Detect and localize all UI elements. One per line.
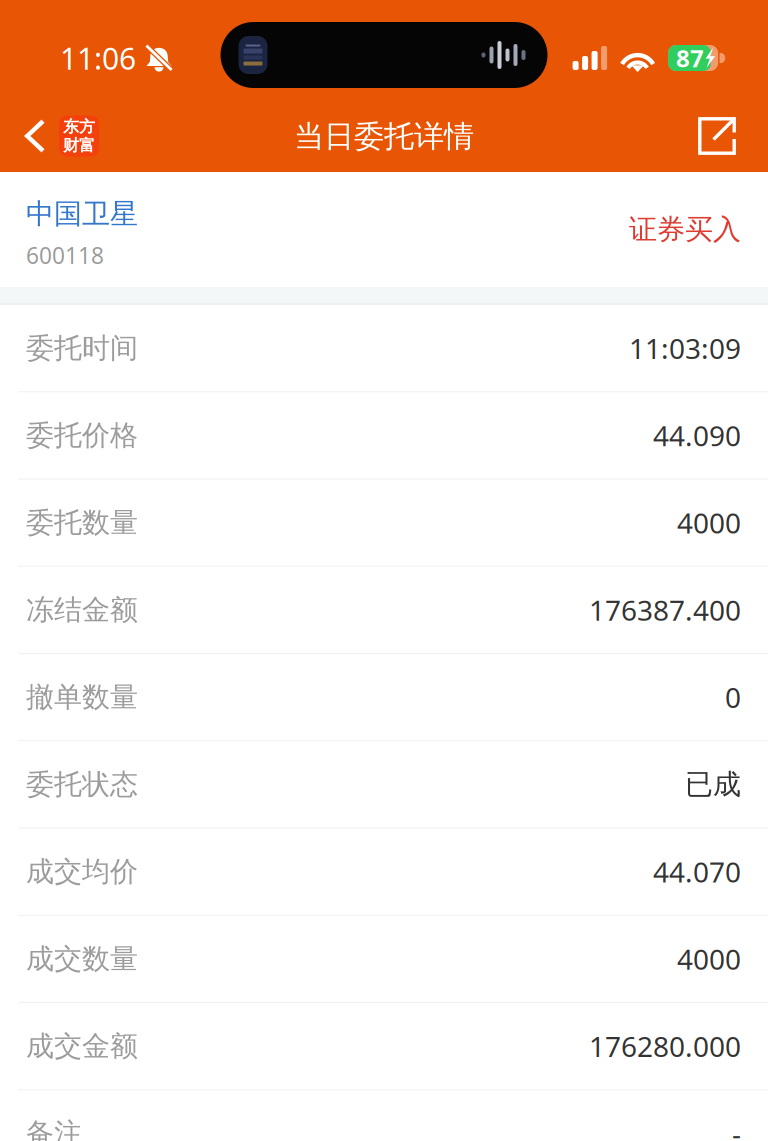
staticText: 已成 [685,767,741,802]
staticText: 撤单数量 [26,680,138,714]
staticText: 委托状态 [26,767,138,802]
staticText: 东方 [63,117,95,136]
staticText: 证券买入 [629,212,741,247]
staticText: 11:03:09 [629,329,741,367]
button[interactable]: Back [0,109,111,166]
staticText: 176280.000 [589,1027,741,1065]
staticText: 87 [676,42,704,74]
staticText: 财富 [63,135,95,155]
staticText: 600118 [26,240,104,270]
staticText: 11:06 [60,38,136,78]
staticText: 中国卫星 [26,197,138,231]
staticText: 当日委托详情 [294,117,474,155]
staticText: 成交金额 [26,1029,138,1063]
staticText: 44.090 [653,417,741,454]
staticText: 44.070 [653,853,741,890]
button[interactable]: 中国卫星 [0,172,768,287]
staticText: 176387.400 [589,591,741,628]
button[interactable]: Share [682,111,768,165]
staticText: 冻结金额 [26,593,138,627]
staticText: 0 [725,678,741,716]
staticText: 4000 [677,504,741,541]
staticText: 成交数量 [26,942,138,976]
staticText: 成交均价 [26,854,138,889]
staticText: 备注 [26,1116,82,1141]
staticText: - [732,1115,741,1141]
staticText: 4000 [677,940,741,977]
staticText: 委托时间 [26,331,138,365]
staticText: 委托价格 [26,418,138,453]
staticText: 委托数量 [26,505,138,540]
